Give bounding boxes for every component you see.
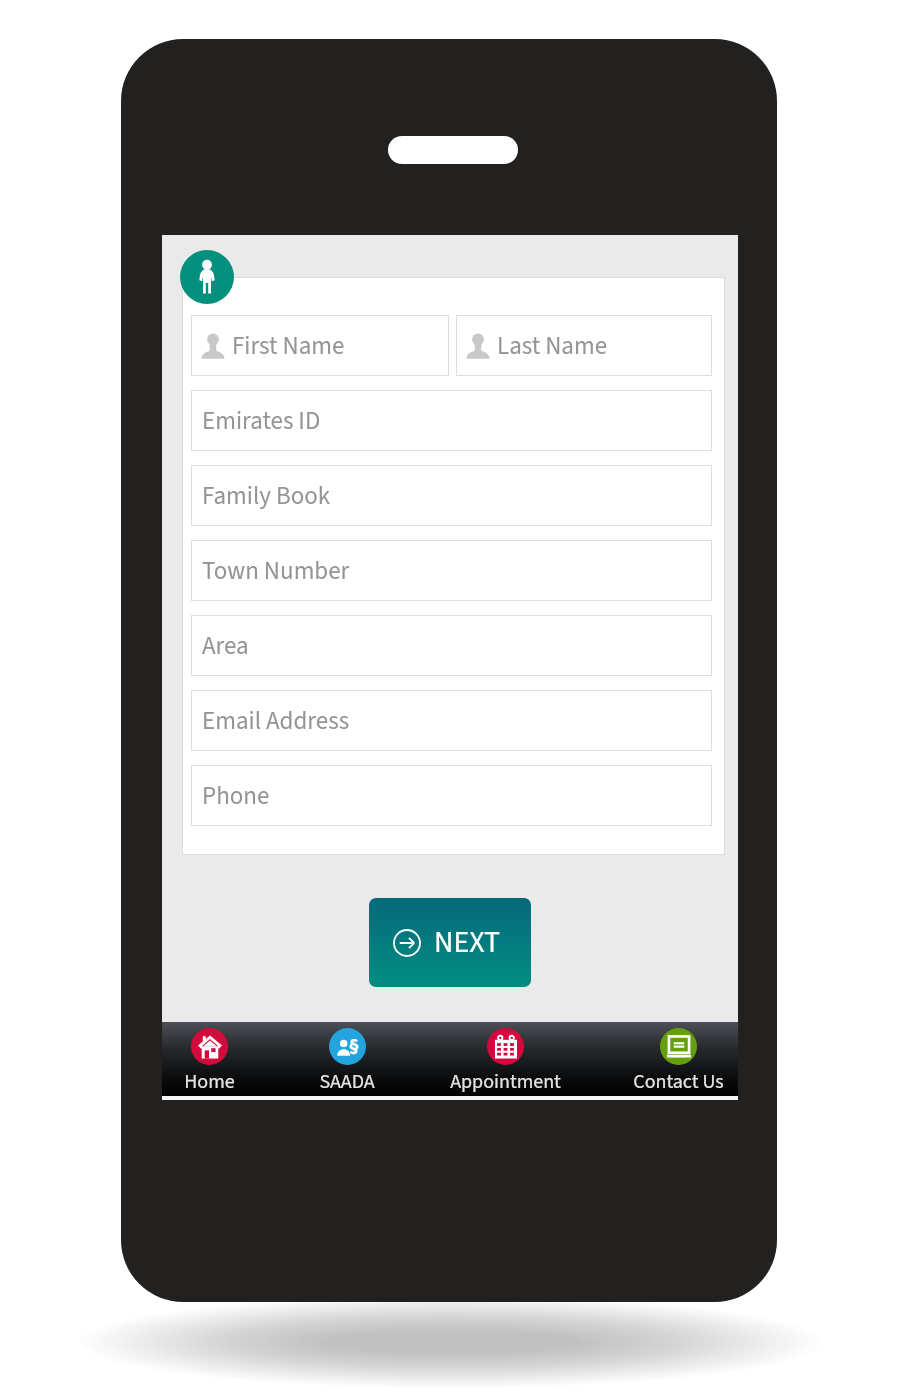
staticText: Phone <box>202 778 270 814</box>
staticText: Home <box>184 1068 235 1096</box>
button[interactable]: Contact Us <box>618 1022 738 1096</box>
staticText: Last Name <box>497 328 608 364</box>
button[interactable]: Last Name <box>456 315 712 376</box>
button[interactable]: Home <box>149 1022 269 1096</box>
button[interactable]: § <box>287 1022 407 1096</box>
staticText: § <box>349 1034 360 1058</box>
button[interactable]: Profile <box>180 250 234 304</box>
staticText: SAADA <box>319 1068 375 1096</box>
button[interactable]: Area <box>191 615 712 676</box>
staticText: NEXT <box>434 921 501 964</box>
button[interactable]: Town Number <box>191 540 712 601</box>
button[interactable]: Emirates ID <box>191 390 712 451</box>
button[interactable]: NEXT <box>369 898 531 987</box>
staticText: Emirates ID <box>202 403 321 439</box>
staticText: Area <box>202 628 249 664</box>
staticText: First Name <box>232 328 345 364</box>
button[interactable]: Appointment <box>445 1022 565 1096</box>
staticText: Appointment <box>450 1068 561 1096</box>
staticText: Town Number <box>202 553 350 589</box>
staticText: Family Book <box>202 478 331 514</box>
staticText: Contact Us <box>633 1068 724 1096</box>
button[interactable]: Email Address <box>191 690 712 751</box>
button[interactable]: Family Book <box>191 465 712 526</box>
button[interactable]: First Name <box>191 315 449 376</box>
button[interactable]: Phone <box>191 765 712 826</box>
staticText: Email Address <box>202 703 350 739</box>
